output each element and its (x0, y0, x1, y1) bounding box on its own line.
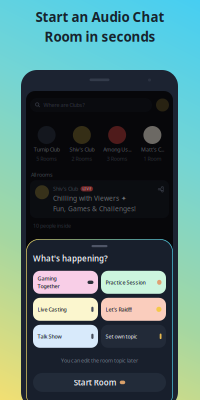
button[interactable]: Turnip Club (29, 126, 64, 162)
button[interactable]: Profile (156, 98, 169, 111)
staticText: Live Casting (37, 306, 66, 313)
button[interactable]: Talk Show (33, 325, 98, 348)
staticText: 2 Rooms (71, 155, 92, 162)
staticText: Together (37, 283, 59, 290)
staticText: Among Us... (103, 146, 131, 153)
staticText: LIVE (82, 186, 91, 191)
staticText: Practice Session (105, 279, 145, 286)
staticText: Let's Raid!!! (105, 306, 131, 313)
staticText: What's happening? (33, 253, 108, 264)
staticText: Start an Audio Chat (35, 8, 164, 26)
staticText: 5 Rooms (36, 155, 57, 162)
staticText: 10 people inside (33, 222, 71, 229)
staticText: 3 Rooms (107, 155, 128, 162)
staticText: Shiv's Club (69, 146, 94, 153)
button[interactable]: Matt's C... (135, 126, 170, 162)
staticText: Set own topic (105, 333, 137, 340)
staticText: 1 Room (143, 155, 161, 162)
button[interactable]: Set own topic (101, 325, 166, 348)
staticText: Matt's C... (141, 146, 164, 153)
staticText: Where are Clubs? (43, 101, 84, 109)
staticText: You can edit the room topic later (61, 357, 138, 364)
staticText: All rooms (31, 171, 53, 178)
button[interactable]: Start Room (33, 373, 166, 392)
staticText: Room in seconds (44, 28, 155, 45)
button[interactable]: Live Casting (33, 298, 98, 321)
staticText: Turnip Club (34, 146, 60, 153)
staticText: Gaming (37, 275, 56, 282)
button[interactable]: Among Us... (99, 126, 135, 162)
button[interactable]: Shiv's Club (30, 180, 169, 218)
staticText: Shiv's Club (53, 185, 78, 192)
button[interactable]: Let's Raid!!! (101, 298, 166, 321)
button[interactable]: Practice Session (101, 271, 166, 294)
button[interactable]: Where are Clubs? (30, 98, 152, 112)
staticText: Fun, Games & Challenges! (53, 204, 136, 213)
staticText: Chilling with Viewers ✦ (53, 194, 127, 203)
staticText: Start Room (74, 377, 117, 388)
staticText: Talk Show (37, 333, 61, 340)
button[interactable]: Shiv's Club (64, 126, 99, 162)
button[interactable]: Gaming (33, 271, 98, 294)
